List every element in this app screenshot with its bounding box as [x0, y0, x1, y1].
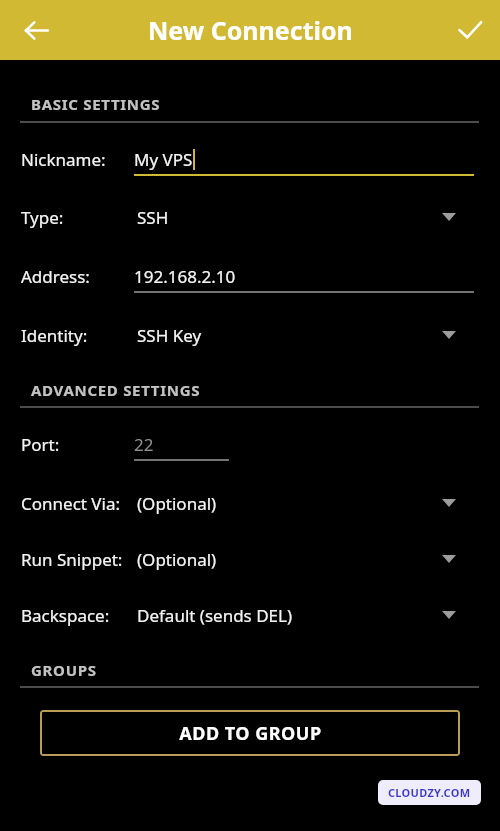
staticText: 192.168.2.10: [134, 265, 236, 288]
button[interactable]: [0, 312, 500, 358]
button[interactable]: [0, 592, 500, 638]
staticText: Default (sends DEL): [137, 604, 293, 627]
staticText: CLOUDZY.COM: [388, 785, 471, 800]
staticText: GROUPS: [31, 660, 97, 680]
staticText: Type:: [21, 206, 64, 229]
staticText: (Optional): [137, 492, 217, 515]
button[interactable]: [0, 480, 500, 526]
staticText: My VPS: [134, 148, 193, 171]
staticText: SSH Key: [137, 324, 202, 347]
staticText: Identity:: [21, 324, 88, 347]
staticText: Backspace:: [21, 604, 110, 627]
staticText: SSH: [137, 206, 169, 229]
staticText: 22: [134, 433, 154, 456]
button[interactable]: [0, 425, 500, 467]
staticText: ADVANCED SETTINGS: [31, 380, 201, 400]
staticText: BASIC SETTINGS: [31, 94, 161, 114]
button[interactable]: ADD TO GROUP: [40, 710, 460, 756]
staticText: Run Snippet:: [21, 548, 123, 571]
button[interactable]: Save: [448, 8, 492, 52]
staticText: Port:: [21, 433, 60, 456]
staticText: Nickname:: [21, 148, 106, 171]
staticText: ADD TO GROUP: [179, 721, 322, 746]
staticText: New Connection: [148, 13, 353, 47]
staticText: Address:: [21, 265, 90, 288]
button[interactable]: [0, 140, 500, 182]
staticText: Connect Via:: [21, 492, 121, 515]
button[interactable]: [0, 194, 500, 240]
button[interactable]: [0, 536, 500, 582]
staticText: (Optional): [137, 548, 217, 571]
button[interactable]: [0, 257, 500, 299]
button[interactable]: Back: [14, 8, 58, 52]
